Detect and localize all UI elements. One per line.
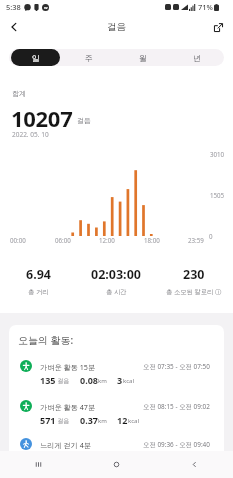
staticText: 02:03:00 (91, 266, 141, 283)
staticText: 가벼운 활동 15분 (40, 362, 96, 372)
button[interactable]: 월 (118, 49, 168, 66)
button[interactable]: 6.94 (0, 266, 77, 296)
staticText: 년 (193, 53, 201, 63)
staticText: 1505 (210, 191, 225, 199)
staticText: km (98, 377, 107, 385)
staticText: 571 (40, 414, 56, 426)
staticText: 오전 07:35 - 오전 07:50 (143, 362, 210, 371)
staticText: 총 시간 (106, 287, 127, 296)
staticText: 3010 (210, 150, 225, 158)
staticText: 18:00 (144, 236, 160, 244)
staticText: 주 (85, 53, 93, 63)
button[interactable]: Back (155, 451, 233, 478)
button[interactable]: Home (77, 451, 155, 478)
staticText: 오늘의 활동: (18, 333, 74, 347)
staticText: 일 (32, 53, 40, 63)
staticText: 걸음 (107, 21, 126, 33)
staticText: 걸음 (77, 116, 91, 125)
button[interactable]: Recents (0, 451, 77, 478)
staticText: 12:00 (99, 236, 115, 244)
button[interactable]: 주 (64, 49, 114, 66)
button[interactable]: 느리게 걷기 4분 (9, 438, 224, 451)
staticText: 오전 09:36 - 오전 09:40 (143, 440, 210, 449)
button[interactable]: Share (206, 15, 230, 39)
staticText: 12 (117, 414, 128, 426)
staticText: kcal (128, 417, 139, 425)
staticText: 23:59 (188, 236, 204, 244)
staticText: 월 (139, 53, 147, 63)
staticText: 3 (117, 374, 123, 386)
staticText: 0 (209, 232, 213, 240)
staticText: kcal (123, 377, 134, 385)
staticText: 걸음 (56, 417, 70, 425)
staticText: 10207 (11, 103, 73, 133)
button[interactable]: 가벼운 활동 15분 (9, 360, 224, 386)
staticText: 71% (198, 2, 213, 12)
button[interactable]: 가벼운 활동 47분 (9, 400, 224, 426)
staticText: 총 거리 (28, 287, 49, 296)
staticText: 0.08 (80, 374, 98, 386)
button[interactable]: 년 (172, 49, 222, 66)
staticText: 0.37 (80, 414, 98, 426)
staticText: 총 소모된 칼로리 ⓘ (166, 287, 222, 296)
staticText: km (98, 417, 107, 425)
staticText: 5:38 (6, 2, 21, 12)
staticText: 걸음 (56, 377, 70, 385)
button[interactable]: 일 (11, 49, 60, 66)
staticText: 230 (183, 266, 205, 283)
staticText: 2022. 05. 10 (12, 130, 49, 139)
staticText: 가벼운 활동 47분 (40, 402, 96, 412)
button[interactable]: 02:03:00 (77, 266, 155, 296)
button[interactable]: Back (2, 15, 26, 39)
staticText: 느리게 걷기 4분 (40, 440, 91, 450)
staticText: 06:00 (55, 236, 71, 244)
button[interactable]: 230 (155, 266, 233, 296)
staticText: 135 (40, 374, 56, 386)
staticText: 합계 (12, 89, 26, 98)
staticText: 오전 08:15 - 오전 09:02 (143, 402, 210, 411)
staticText: 6.94 (26, 266, 51, 283)
staticText: w (44, 5, 48, 11)
staticText: 00:00 (10, 236, 26, 244)
